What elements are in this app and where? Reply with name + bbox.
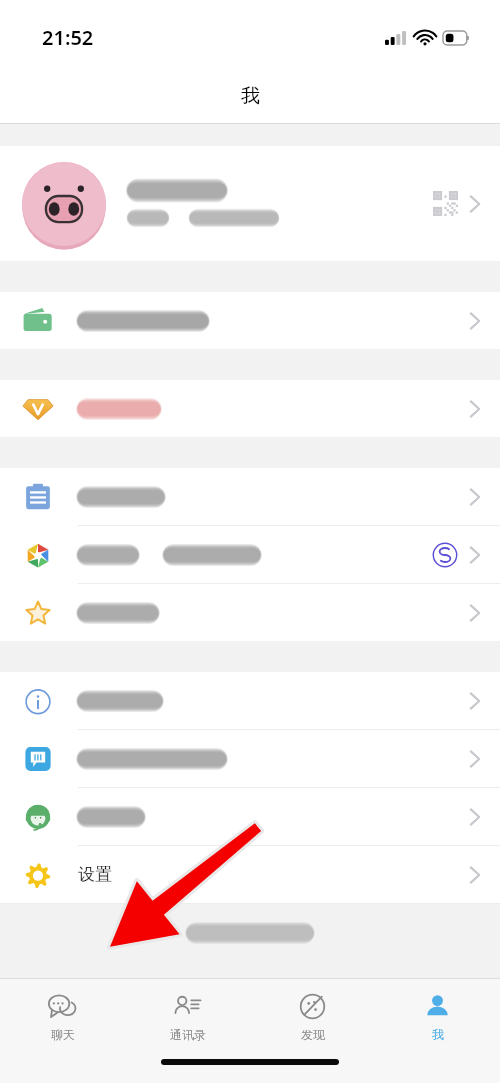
- button[interactable]: 聊天: [0, 979, 125, 1053]
- button[interactable]: [0, 526, 500, 583]
- staticText: 设置: [78, 864, 112, 885]
- button[interactable]: [0, 292, 500, 349]
- button[interactable]: [0, 788, 500, 845]
- button[interactable]: [0, 730, 500, 787]
- staticText: 我: [241, 84, 260, 108]
- button[interactable]: 通讯录: [125, 979, 250, 1053]
- staticText: 通讯录: [170, 1027, 206, 1042]
- staticText: 聊天: [51, 1027, 75, 1042]
- staticText: 发现: [301, 1027, 325, 1042]
- button[interactable]: My QR code: [0, 146, 500, 261]
- button[interactable]: 设置: [0, 846, 500, 903]
- button[interactable]: 我: [375, 979, 500, 1053]
- staticText: 我: [432, 1027, 444, 1042]
- button[interactable]: [0, 468, 500, 525]
- staticText: 21:52: [42, 24, 94, 51]
- button[interactable]: [0, 672, 500, 729]
- button[interactable]: 发现: [250, 979, 375, 1053]
- button[interactable]: [0, 584, 500, 641]
- button[interactable]: [0, 380, 500, 437]
- other: My QR code: [433, 191, 458, 216]
